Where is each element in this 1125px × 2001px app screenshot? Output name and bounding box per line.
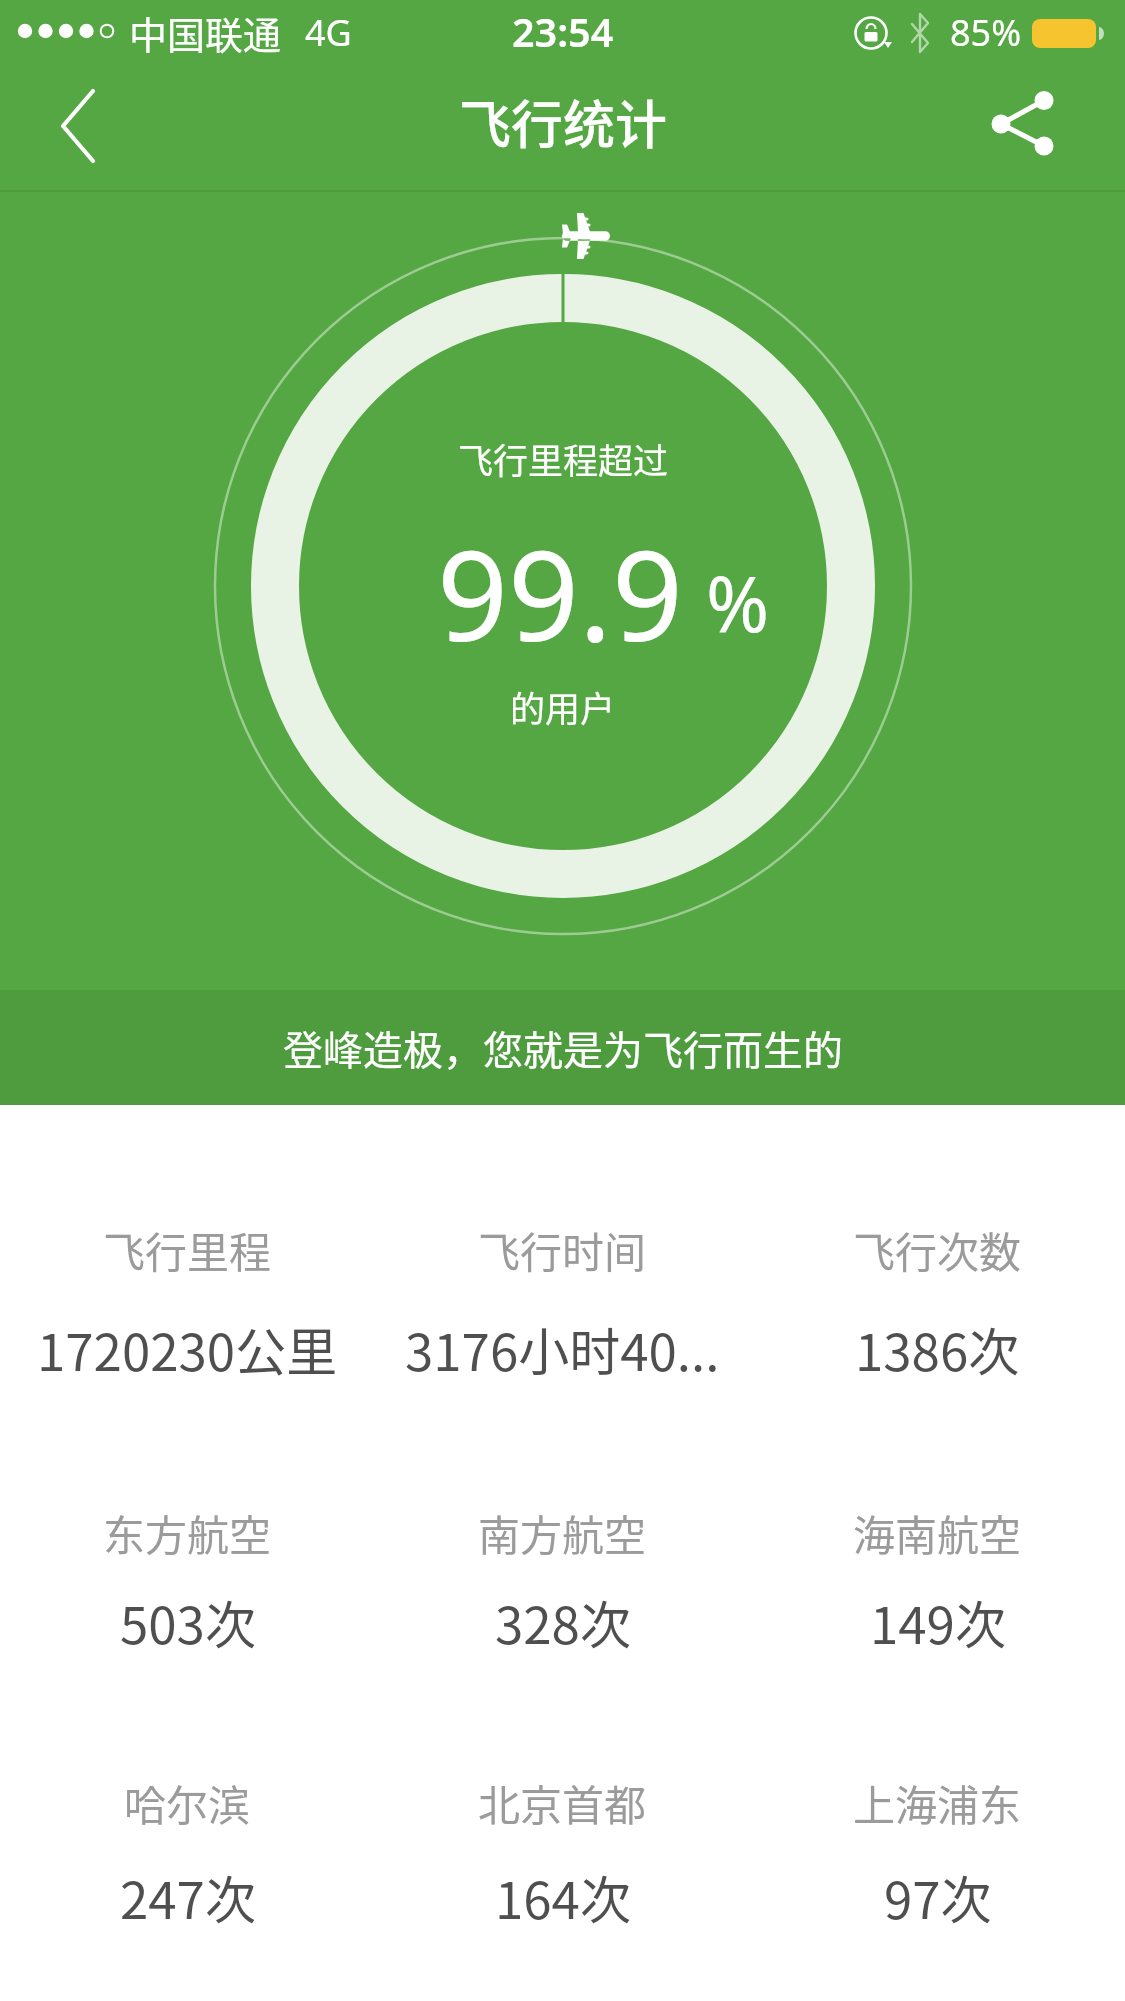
staticText: 哈尔滨 [124,1772,251,1833]
staticText: 164次 [495,1860,631,1934]
staticText: 登峰造极，您就是为飞行而生的 [283,1019,843,1077]
staticText: 飞行里程超过 [458,433,669,484]
staticText: 97次 [884,1860,992,1934]
staticText: 飞行统计 [459,84,668,159]
staticText: 南方航空 [478,1502,647,1563]
staticText: 328次 [495,1585,631,1659]
staticText: 飞行里程 [103,1219,272,1280]
staticText: 149次 [870,1585,1006,1659]
staticText: 飞行时间 [478,1219,647,1280]
staticText: 247次 [120,1860,256,1934]
staticText: 东方航空 [103,1502,272,1563]
staticText: 的用户 [510,681,616,732]
staticText: 飞行次数 [853,1219,1022,1280]
staticText: 北京首都 [478,1772,647,1833]
staticText: 99.9 [437,508,684,677]
staticText: 1386次 [855,1312,1020,1386]
staticText: 上海浦东 [853,1772,1022,1833]
staticText: 85% [950,8,1022,57]
staticText: 中国联通 [129,5,282,60]
button[interactable] [30,75,130,175]
staticText: % [706,551,770,655]
staticText: 4G [305,8,352,57]
staticText: 1720230公里 [37,1312,338,1386]
button[interactable] [970,75,1080,175]
staticText: 503次 [120,1585,256,1659]
staticText: 3176小时40... [405,1312,720,1386]
staticText: 23:54 [512,5,614,59]
staticText: 海南航空 [853,1502,1022,1563]
